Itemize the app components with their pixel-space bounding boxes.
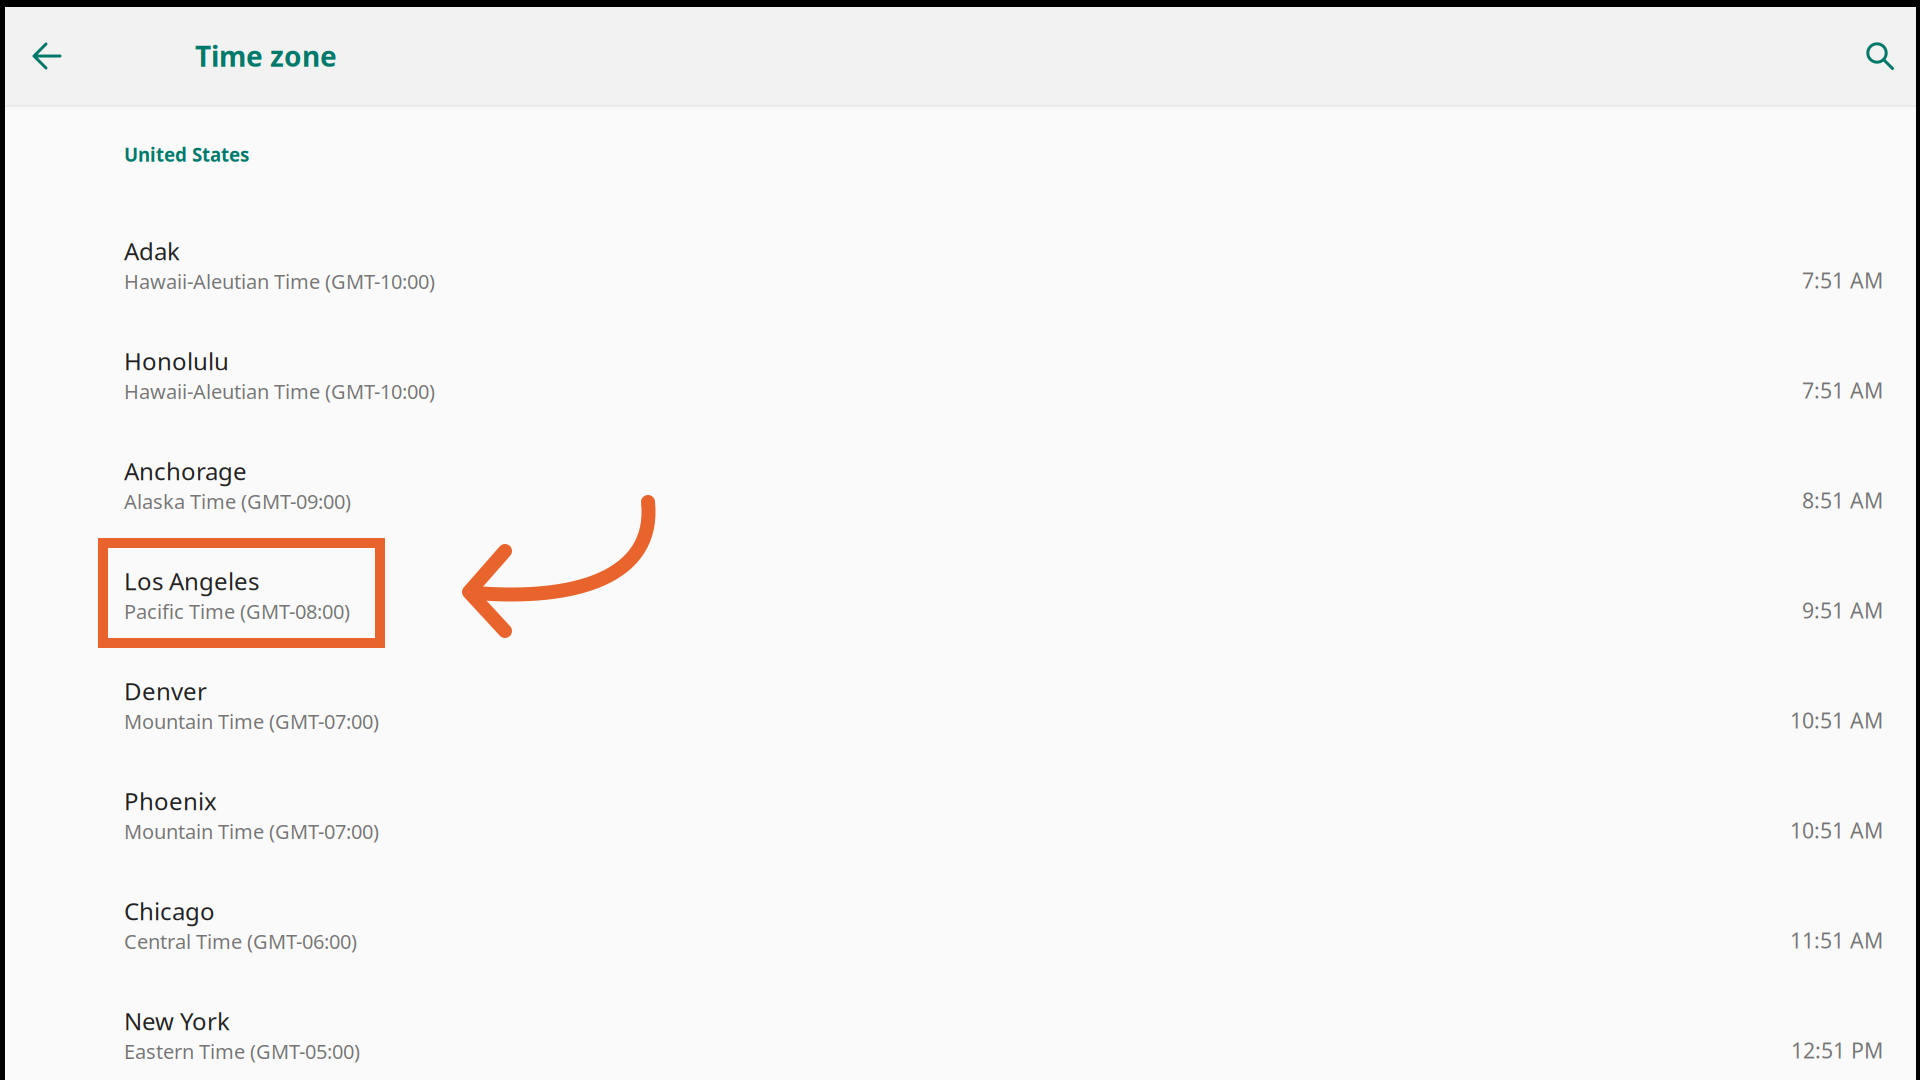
button[interactable]: Back (5, 7, 89, 105)
staticText: Eastern Time (GMT-05:00) (124, 1038, 360, 1064)
button[interactable]: Phoenix (5, 760, 1916, 870)
button[interactable]: New York (5, 980, 1916, 1080)
staticText: New York (124, 1005, 230, 1037)
staticText: Alaska Time (GMT-09:00) (124, 488, 351, 514)
staticText: Time zone (195, 37, 337, 75)
staticText: 7:51 AM (1802, 376, 1883, 404)
button[interactable]: Chicago (5, 870, 1916, 980)
staticText: United States (124, 142, 249, 167)
staticText: Adak (124, 235, 180, 267)
staticText: 10:51 AM (1790, 706, 1883, 734)
staticText: Central Time (GMT-06:00) (124, 928, 357, 954)
staticText: Honolulu (124, 345, 229, 377)
button[interactable]: Los Angeles (5, 540, 1916, 650)
button[interactable]: Honolulu (5, 320, 1916, 430)
staticText: Chicago (124, 895, 215, 927)
button[interactable]: Search (1844, 7, 1916, 105)
staticText: 7:51 AM (1802, 266, 1883, 294)
staticText: Hawaii-Aleutian Time (GMT-10:00) (124, 378, 435, 404)
staticText: Denver (124, 675, 207, 707)
staticText: Mountain Time (GMT-07:00) (124, 818, 379, 844)
staticText: Phoenix (124, 785, 217, 817)
staticText: Hawaii-Aleutian Time (GMT-10:00) (124, 268, 435, 294)
staticText: 11:51 AM (1790, 926, 1883, 954)
staticText: 8:51 AM (1802, 486, 1883, 514)
staticText: 9:51 AM (1802, 596, 1883, 624)
staticText: Pacific Time (GMT-08:00) (124, 598, 350, 624)
button[interactable]: Denver (5, 650, 1916, 760)
staticText: 12:51 PM (1791, 1036, 1883, 1064)
staticText: Anchorage (124, 455, 247, 487)
staticText: Los Angeles (124, 565, 259, 597)
staticText: 10:51 AM (1790, 816, 1883, 844)
button[interactable]: Adak (5, 210, 1916, 320)
staticText: Mountain Time (GMT-07:00) (124, 708, 379, 734)
button[interactable]: Anchorage (5, 430, 1916, 540)
